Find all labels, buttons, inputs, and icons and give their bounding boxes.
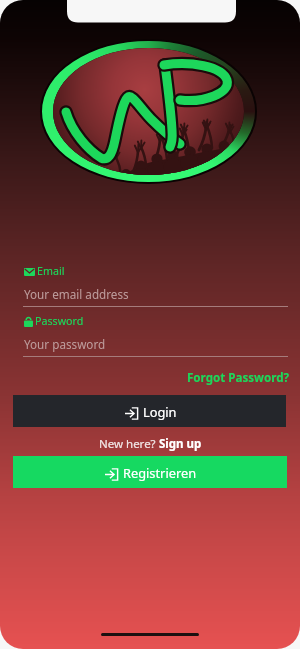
staticText: Registrieren <box>123 464 197 481</box>
staticText: Login <box>143 403 177 420</box>
staticText: Forgot Password? <box>187 370 290 386</box>
button[interactable]: Forgot Password? <box>182 366 295 390</box>
staticText: Password <box>35 314 84 329</box>
button[interactable]: Sign up <box>159 436 202 452</box>
staticText: Your email address <box>24 286 129 302</box>
button[interactable]: Login <box>13 395 286 427</box>
staticText: New here? <box>99 436 159 452</box>
staticText: Your password <box>24 336 106 352</box>
button[interactable]: Registrieren <box>13 456 287 488</box>
staticText: Email <box>37 264 65 279</box>
